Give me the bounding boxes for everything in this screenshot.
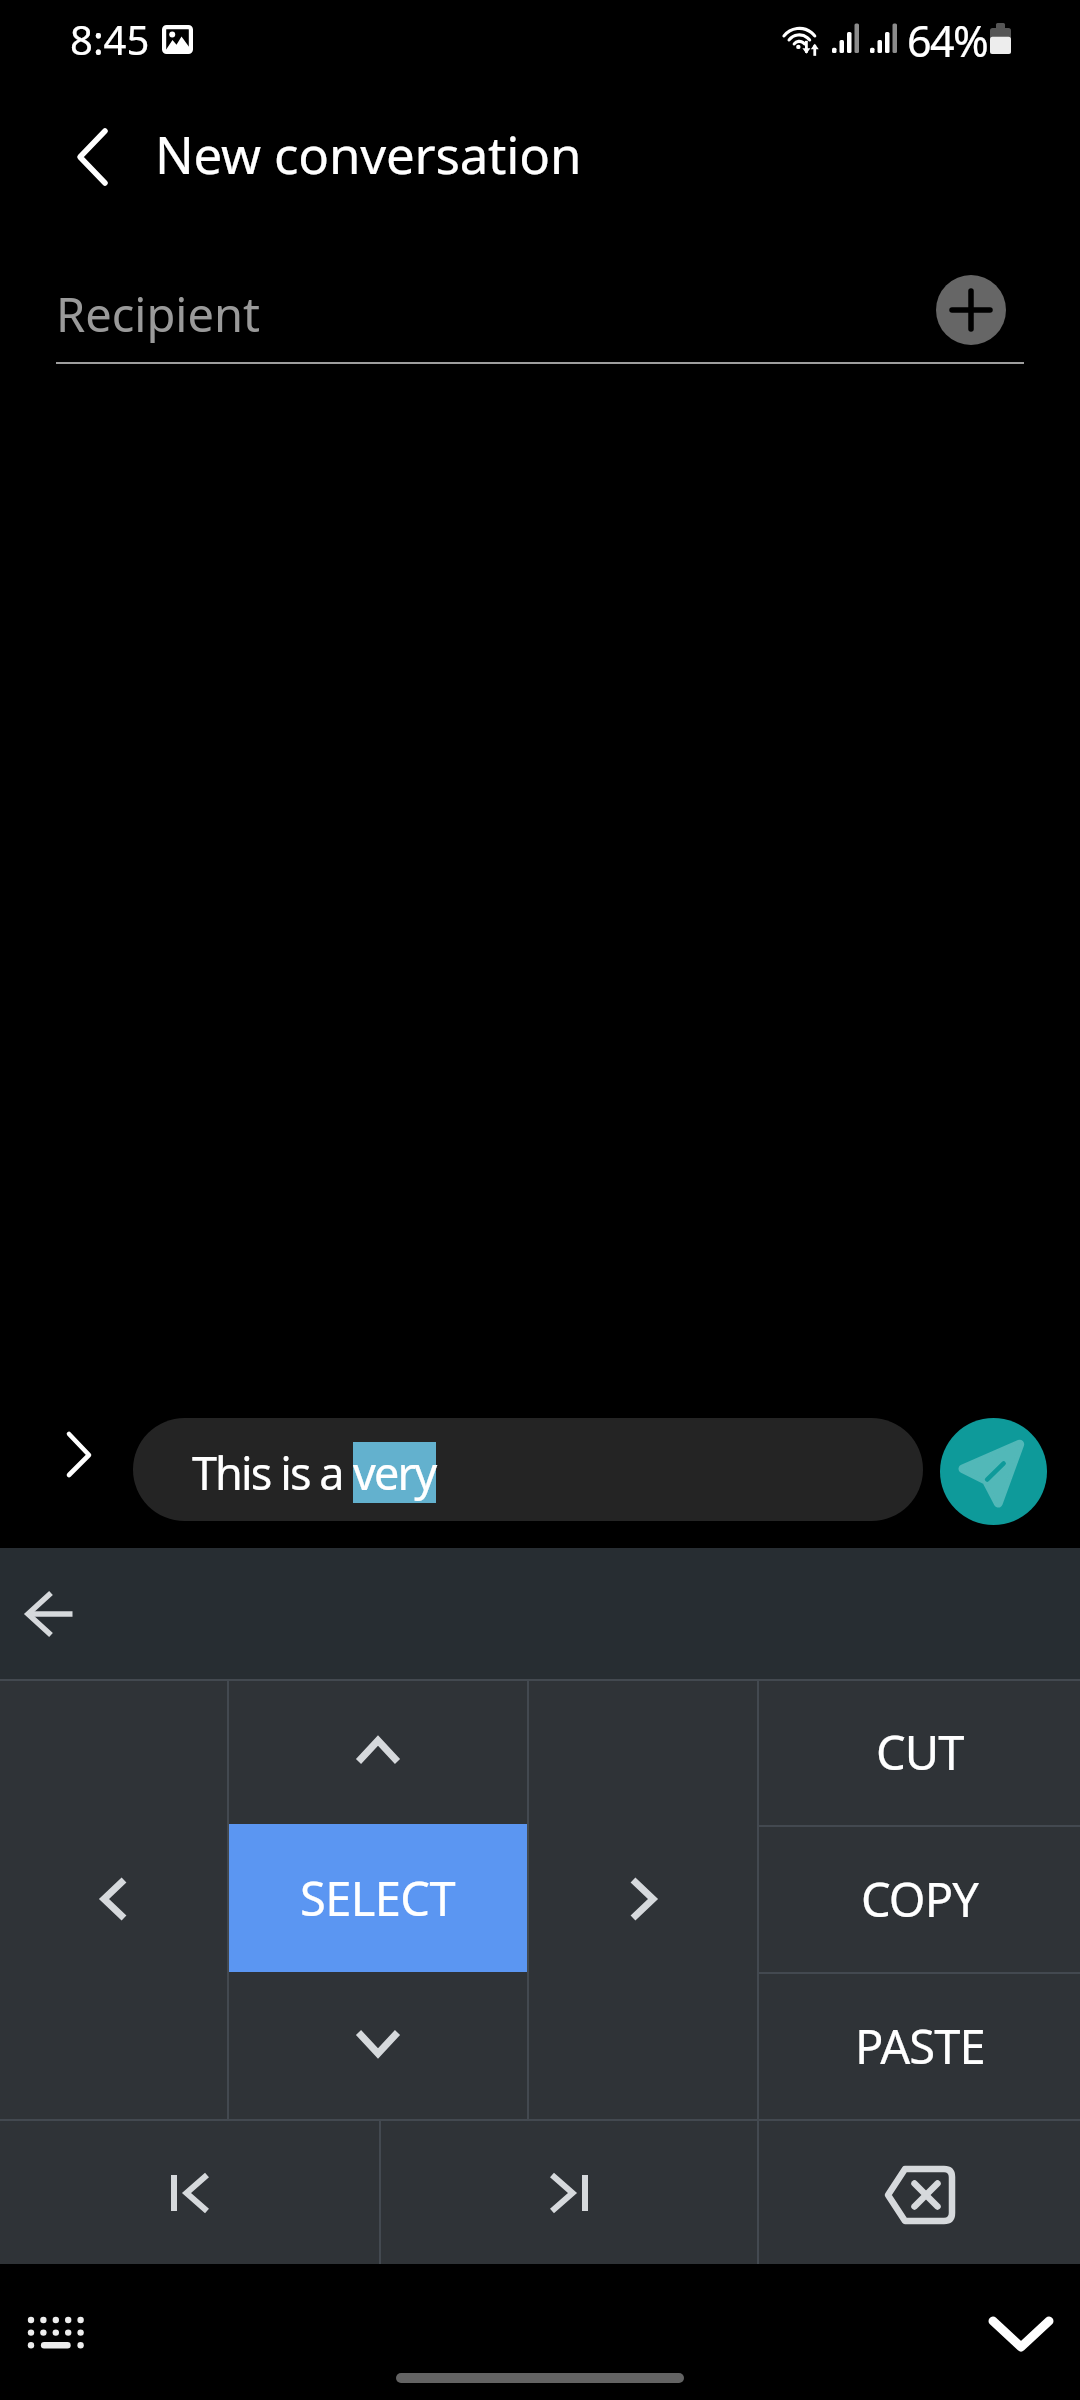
button[interactable]: Back: [40, 118, 140, 218]
button[interactable]: Delete: [759, 2119, 1080, 2264]
button[interactable]: This is a: [133, 1418, 923, 1521]
button[interactable]: Hide keyboard: [975, 2287, 1067, 2379]
button[interactable]: Send: [940, 1418, 1047, 1525]
button[interactable]: Move right: [529, 1679, 757, 2119]
button[interactable]: Move down: [229, 1972, 527, 2119]
button[interactable]: Add recipient: [936, 275, 1006, 345]
staticText: very: [353, 1442, 436, 1503]
staticText: 64%: [907, 11, 988, 70]
button[interactable]: CUT: [759, 1679, 1080, 1825]
staticText: PASTE: [855, 2014, 985, 2078]
staticText: Recipient: [56, 282, 260, 346]
button[interactable]: Move to start: [0, 2119, 379, 2264]
staticText: SELECT: [300, 1866, 455, 1930]
staticText: This is a: [192, 1442, 353, 1503]
button[interactable]: Expand: [29, 1416, 109, 1496]
staticText: 8:45: [70, 12, 150, 66]
button[interactable]: Move up: [229, 1679, 527, 1825]
button[interactable]: Move to end: [381, 2119, 757, 2264]
button[interactable]: SELECT: [227, 1824, 528, 1972]
button[interactable]: PASTE: [759, 1972, 1080, 2119]
button[interactable]: Switch keyboard: [10, 2294, 86, 2370]
button[interactable]: Move left: [0, 1679, 227, 2119]
button[interactable]: Back: [8, 1573, 90, 1655]
staticText: New conversation: [155, 119, 582, 188]
button[interactable]: COPY: [759, 1825, 1080, 1972]
staticText: COPY: [861, 1867, 978, 1931]
staticText: CUT: [876, 1720, 964, 1784]
